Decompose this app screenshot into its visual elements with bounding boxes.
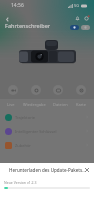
staticText: Trajektorie: [15, 115, 36, 120]
button[interactable]: Zubehör: [0, 138, 94, 152]
button[interactable]: Status: [81, 25, 90, 30]
button[interactable]: Album: [53, 85, 63, 95]
staticText: Herunterladen des Update-Pakets...: [9, 167, 86, 173]
staticText: 5G: [74, 3, 80, 8]
staticText: Fahrtenschreiber: [5, 22, 51, 29]
button[interactable]: Karte: [75, 102, 88, 107]
staticText: Dateien: [53, 102, 68, 107]
staticText: Karte: [76, 102, 87, 107]
staticText: 14:56: [11, 2, 24, 9]
button[interactable]: Photo: [31, 85, 41, 95]
staticText: Wiedergabe: [23, 102, 46, 107]
button[interactable]: Record: [8, 85, 18, 95]
button[interactable]: Alerts: [82, 13, 92, 23]
button[interactable]: Intelligenter Schlüssel: [0, 124, 94, 138]
staticText: Zubehör: [15, 143, 32, 148]
button[interactable]: Live: [6, 102, 16, 107]
button[interactable]: Trajektorie: [0, 110, 94, 124]
button[interactable]: Close: [83, 166, 91, 174]
button[interactable]: Notifications: [72, 13, 82, 23]
button[interactable]: Back: [2, 14, 12, 24]
staticText: Live: [7, 102, 15, 107]
button[interactable]: Settings: [76, 85, 86, 95]
staticText: Intelligenter Schlüssel: [15, 129, 57, 134]
button[interactable]: Dateien: [52, 102, 69, 107]
staticText: Neue Version v1.2.3: [4, 180, 37, 185]
button[interactable]: Wiedergabe: [22, 102, 47, 107]
button[interactable]: Signal: [70, 25, 79, 30]
